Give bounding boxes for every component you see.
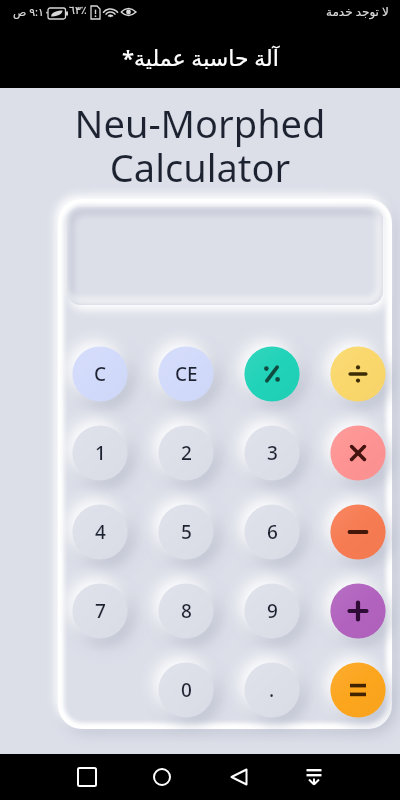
staticText: CE: [175, 361, 198, 387]
button[interactable]: C: [62, 336, 138, 412]
staticText: لا توجد خدمة: [326, 3, 389, 19]
button[interactable]: 2: [148, 415, 224, 491]
button[interactable]: 9: [234, 573, 310, 649]
button[interactable]: CE: [148, 336, 224, 412]
button[interactable]: Add: [320, 573, 396, 649]
staticText: 1: [95, 440, 106, 466]
staticText: ٩:١٠ ص: [13, 4, 50, 19]
button[interactable]: Back: [215, 754, 263, 800]
button[interactable]: 8: [148, 573, 224, 649]
staticText: 6: [267, 519, 278, 545]
staticText: ٦٣٪: [69, 4, 87, 17]
staticText: C: [94, 361, 107, 387]
button[interactable]: Recents: [63, 754, 111, 800]
staticText: 8: [181, 598, 192, 624]
staticText: 4: [95, 519, 106, 545]
button[interactable]: 7: [62, 573, 138, 649]
staticText: *آلة حاسبة عملية: [122, 42, 279, 72]
button[interactable]: 4: [62, 494, 138, 570]
staticText: .: [269, 677, 275, 703]
staticText: 9: [267, 598, 278, 624]
staticText: 2: [181, 440, 192, 466]
staticText: 3: [267, 440, 278, 466]
button[interactable]: Hide keyboard: [290, 754, 338, 800]
button[interactable]: Subtract: [320, 494, 396, 570]
button[interactable]: .: [234, 652, 310, 728]
button[interactable]: 3: [234, 415, 310, 491]
button[interactable]: Divide: [320, 336, 396, 412]
staticText: 0: [181, 677, 192, 703]
button[interactable]: Percent: [234, 336, 310, 412]
staticText: 5: [181, 519, 192, 545]
button[interactable]: Equals: [320, 652, 396, 728]
button[interactable]: Multiply: [320, 415, 396, 491]
button[interactable]: 1: [62, 415, 138, 491]
button[interactable]: 5: [148, 494, 224, 570]
button[interactable]: Home: [138, 754, 186, 800]
button[interactable]: 6: [234, 494, 310, 570]
staticText: Neu-Morphed Calculator: [0, 97, 400, 193]
staticText: 7: [95, 598, 106, 624]
button[interactable]: 0: [148, 652, 224, 728]
